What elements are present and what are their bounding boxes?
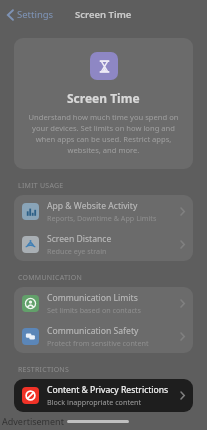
staticText: Set limits based on contacts xyxy=(47,305,141,315)
staticText: Communication Safety xyxy=(47,325,139,337)
other: Communication Safety xyxy=(25,331,36,342)
staticText: Reduce eye strain xyxy=(47,246,107,256)
button[interactable]: Settings xyxy=(4,4,57,25)
staticText: RESTRICTIONS xyxy=(18,365,70,375)
other: Screen Distance xyxy=(25,239,36,250)
staticText: Screen Time xyxy=(75,8,132,21)
other: Communication Limits xyxy=(25,298,36,309)
button[interactable]: App & Website Activity xyxy=(14,195,193,228)
staticText: Settings xyxy=(17,8,54,21)
button[interactable]: Content & Privacy Restrictions xyxy=(14,379,193,412)
button[interactable]: Communication Safety xyxy=(14,320,193,353)
staticText: App & Website Activity xyxy=(47,200,138,212)
staticText: Screen Time xyxy=(67,90,140,106)
other: Screen Time xyxy=(98,60,111,73)
other: Content & Privacy Restrictions xyxy=(25,390,36,401)
button[interactable]: Communication Limits xyxy=(14,287,193,320)
staticText: Content & Privacy Restrictions xyxy=(47,384,169,396)
other: App & Website Activity xyxy=(26,207,36,217)
staticText: Understand how much time you spend on yo… xyxy=(24,112,183,155)
staticText: Communication Limits xyxy=(47,292,138,304)
staticText: Reports, Downtime & App Limits xyxy=(47,213,157,223)
button[interactable]: Screen Distance xyxy=(14,228,193,261)
staticText: Block inappropriate content xyxy=(47,397,142,407)
staticText: LIMIT USAGE xyxy=(18,181,64,191)
staticText: Screen Distance xyxy=(47,233,112,245)
staticText: COMMUNICATION xyxy=(18,273,82,283)
staticText: Protect from sensitive content xyxy=(47,338,149,348)
staticText: Advertisement xyxy=(2,415,64,427)
